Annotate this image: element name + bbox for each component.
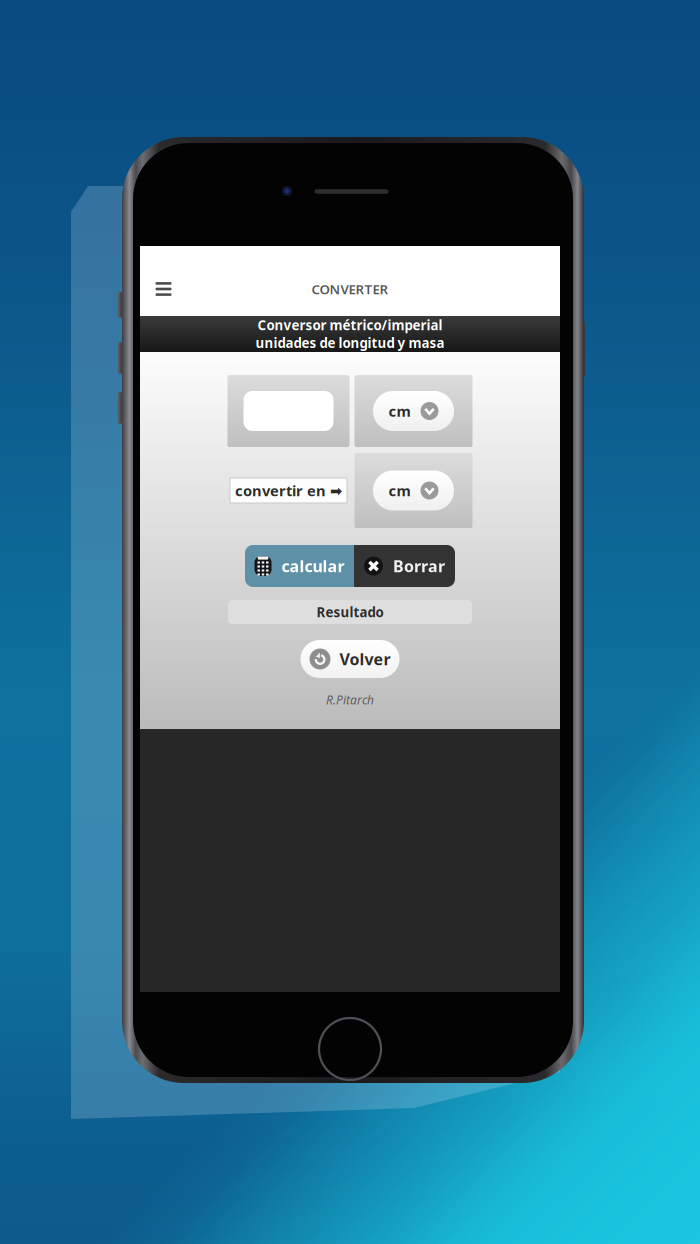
button[interactable]: convertir en ➡: [230, 478, 347, 503]
staticText: Borrar: [393, 555, 445, 577]
staticText: convertir en ➡: [235, 481, 342, 500]
staticText: Resultado: [316, 603, 383, 621]
button[interactable]: Volver: [300, 640, 399, 678]
staticText: cm: [388, 401, 410, 421]
staticText: Conversor métrico/imperial: [257, 316, 442, 334]
staticText: calcular: [281, 555, 344, 577]
button[interactable]: calcular: [245, 545, 354, 587]
staticText: CONVERTER: [311, 280, 388, 298]
button[interactable]: Borrar: [354, 545, 455, 587]
button[interactable]: cm: [373, 391, 454, 431]
staticText: cm: [388, 481, 410, 500]
staticText: Volver: [339, 648, 390, 670]
staticText: R.Pitarch: [326, 692, 374, 708]
button[interactable]: cm: [373, 470, 454, 510]
staticText: unidades de longitud y masa: [255, 334, 444, 352]
button[interactable]: Menu: [141, 267, 185, 311]
